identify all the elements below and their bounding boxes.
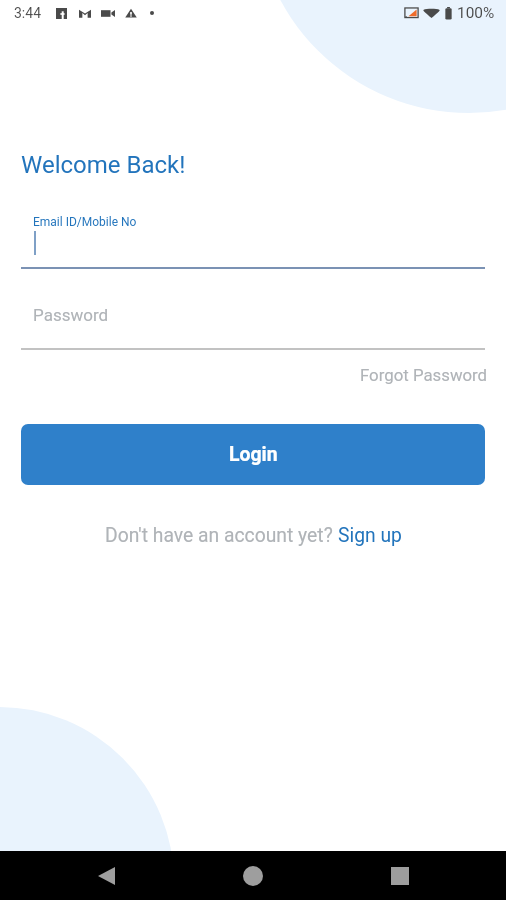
button[interactable]: Sign up [338,524,402,547]
staticText: Login [229,443,278,466]
button[interactable]: Home [233,856,273,896]
button[interactable]: Back [86,856,126,896]
staticText: Password [33,305,109,325]
staticText: 100% [457,4,495,22]
staticText: Don't have an account yet? [105,524,338,547]
staticText: 3:44 [14,5,41,21]
staticText: Email ID/Mobile No [33,215,137,229]
button[interactable]: Recent apps [380,856,420,896]
button[interactable]: Forgot Password [358,361,490,389]
staticText: Welcome Back! [21,151,186,179]
button[interactable]: Login [21,424,485,485]
